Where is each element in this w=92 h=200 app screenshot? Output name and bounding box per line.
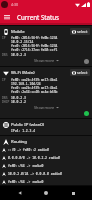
button[interactable]: Show more <box>0 57 92 64</box>
staticText: 10.0.2.0/24 -> 0.0.0.0 radio0 <box>8 172 62 176</box>
staticText: Routing <box>11 138 27 144</box>
staticText: fe80::/64 -> radio0 <box>8 180 44 184</box>
staticText: DNS <box>2 53 8 57</box>
button[interactable]: Back <box>13 186 27 200</box>
staticText: Mobile <box>11 28 25 34</box>
staticText: IP <box>2 36 6 40</box>
button[interactable]: select <box>70 69 90 76</box>
staticText: fec0::2016:56ff:fe0b:1234 <box>11 44 58 48</box>
button[interactable]: Show more <box>0 104 92 111</box>
staticText: 10.0.2.3 <box>11 53 26 57</box>
staticText: fec0::2a34:cc48:ac4a:b65b <box>11 90 58 94</box>
staticText: DNS <box>2 96 8 100</box>
staticText: select <box>77 29 88 34</box>
button[interactable]: Recents <box>66 186 80 200</box>
staticText: DHCP <box>2 100 10 104</box>
staticText: fe80::/64 -> radio0 <box>8 164 44 168</box>
staticText: Show more <box>34 105 55 110</box>
staticText: fec0::aa2b:4f39:ae17:4ba1 <box>11 86 58 90</box>
staticText: Wi-Fi (Main) <box>11 69 35 75</box>
staticText: fe80::2016:56ff:fe0b:1234 <box>11 36 58 40</box>
staticText: 10.0.2.3 <box>11 96 26 100</box>
staticText: IP <box>2 78 6 82</box>
button[interactable]: select <box>70 28 90 35</box>
staticText: 4:30 <box>11 2 19 7</box>
staticText: fe80::aa2b:4f39:ae17:4ba1 <box>11 78 58 82</box>
staticText: 10.0.2.15/24 <box>11 40 34 44</box>
staticText: IPv4: 1.2.3.4 <box>11 129 36 133</box>
staticText: 10.0.2.2 <box>11 100 26 104</box>
staticText: ::/0 -> fe80::2 radio0 <box>8 148 49 152</box>
button[interactable]: Menu <box>0 9 14 25</box>
staticText: fec0::2716:37ee:fa50:ccf1 <box>11 48 58 52</box>
staticText: 192.168.1.104/24 <box>11 82 41 86</box>
staticText: 0.0.0.0/0 -> 10.0.2.2 radio0 <box>8 156 60 160</box>
button[interactable]: Home <box>39 186 53 200</box>
staticText: Show more <box>34 58 55 63</box>
staticText: Current Status <box>17 13 60 21</box>
staticText: Public IP (wlan0) <box>11 121 45 127</box>
staticText: select <box>77 70 88 75</box>
